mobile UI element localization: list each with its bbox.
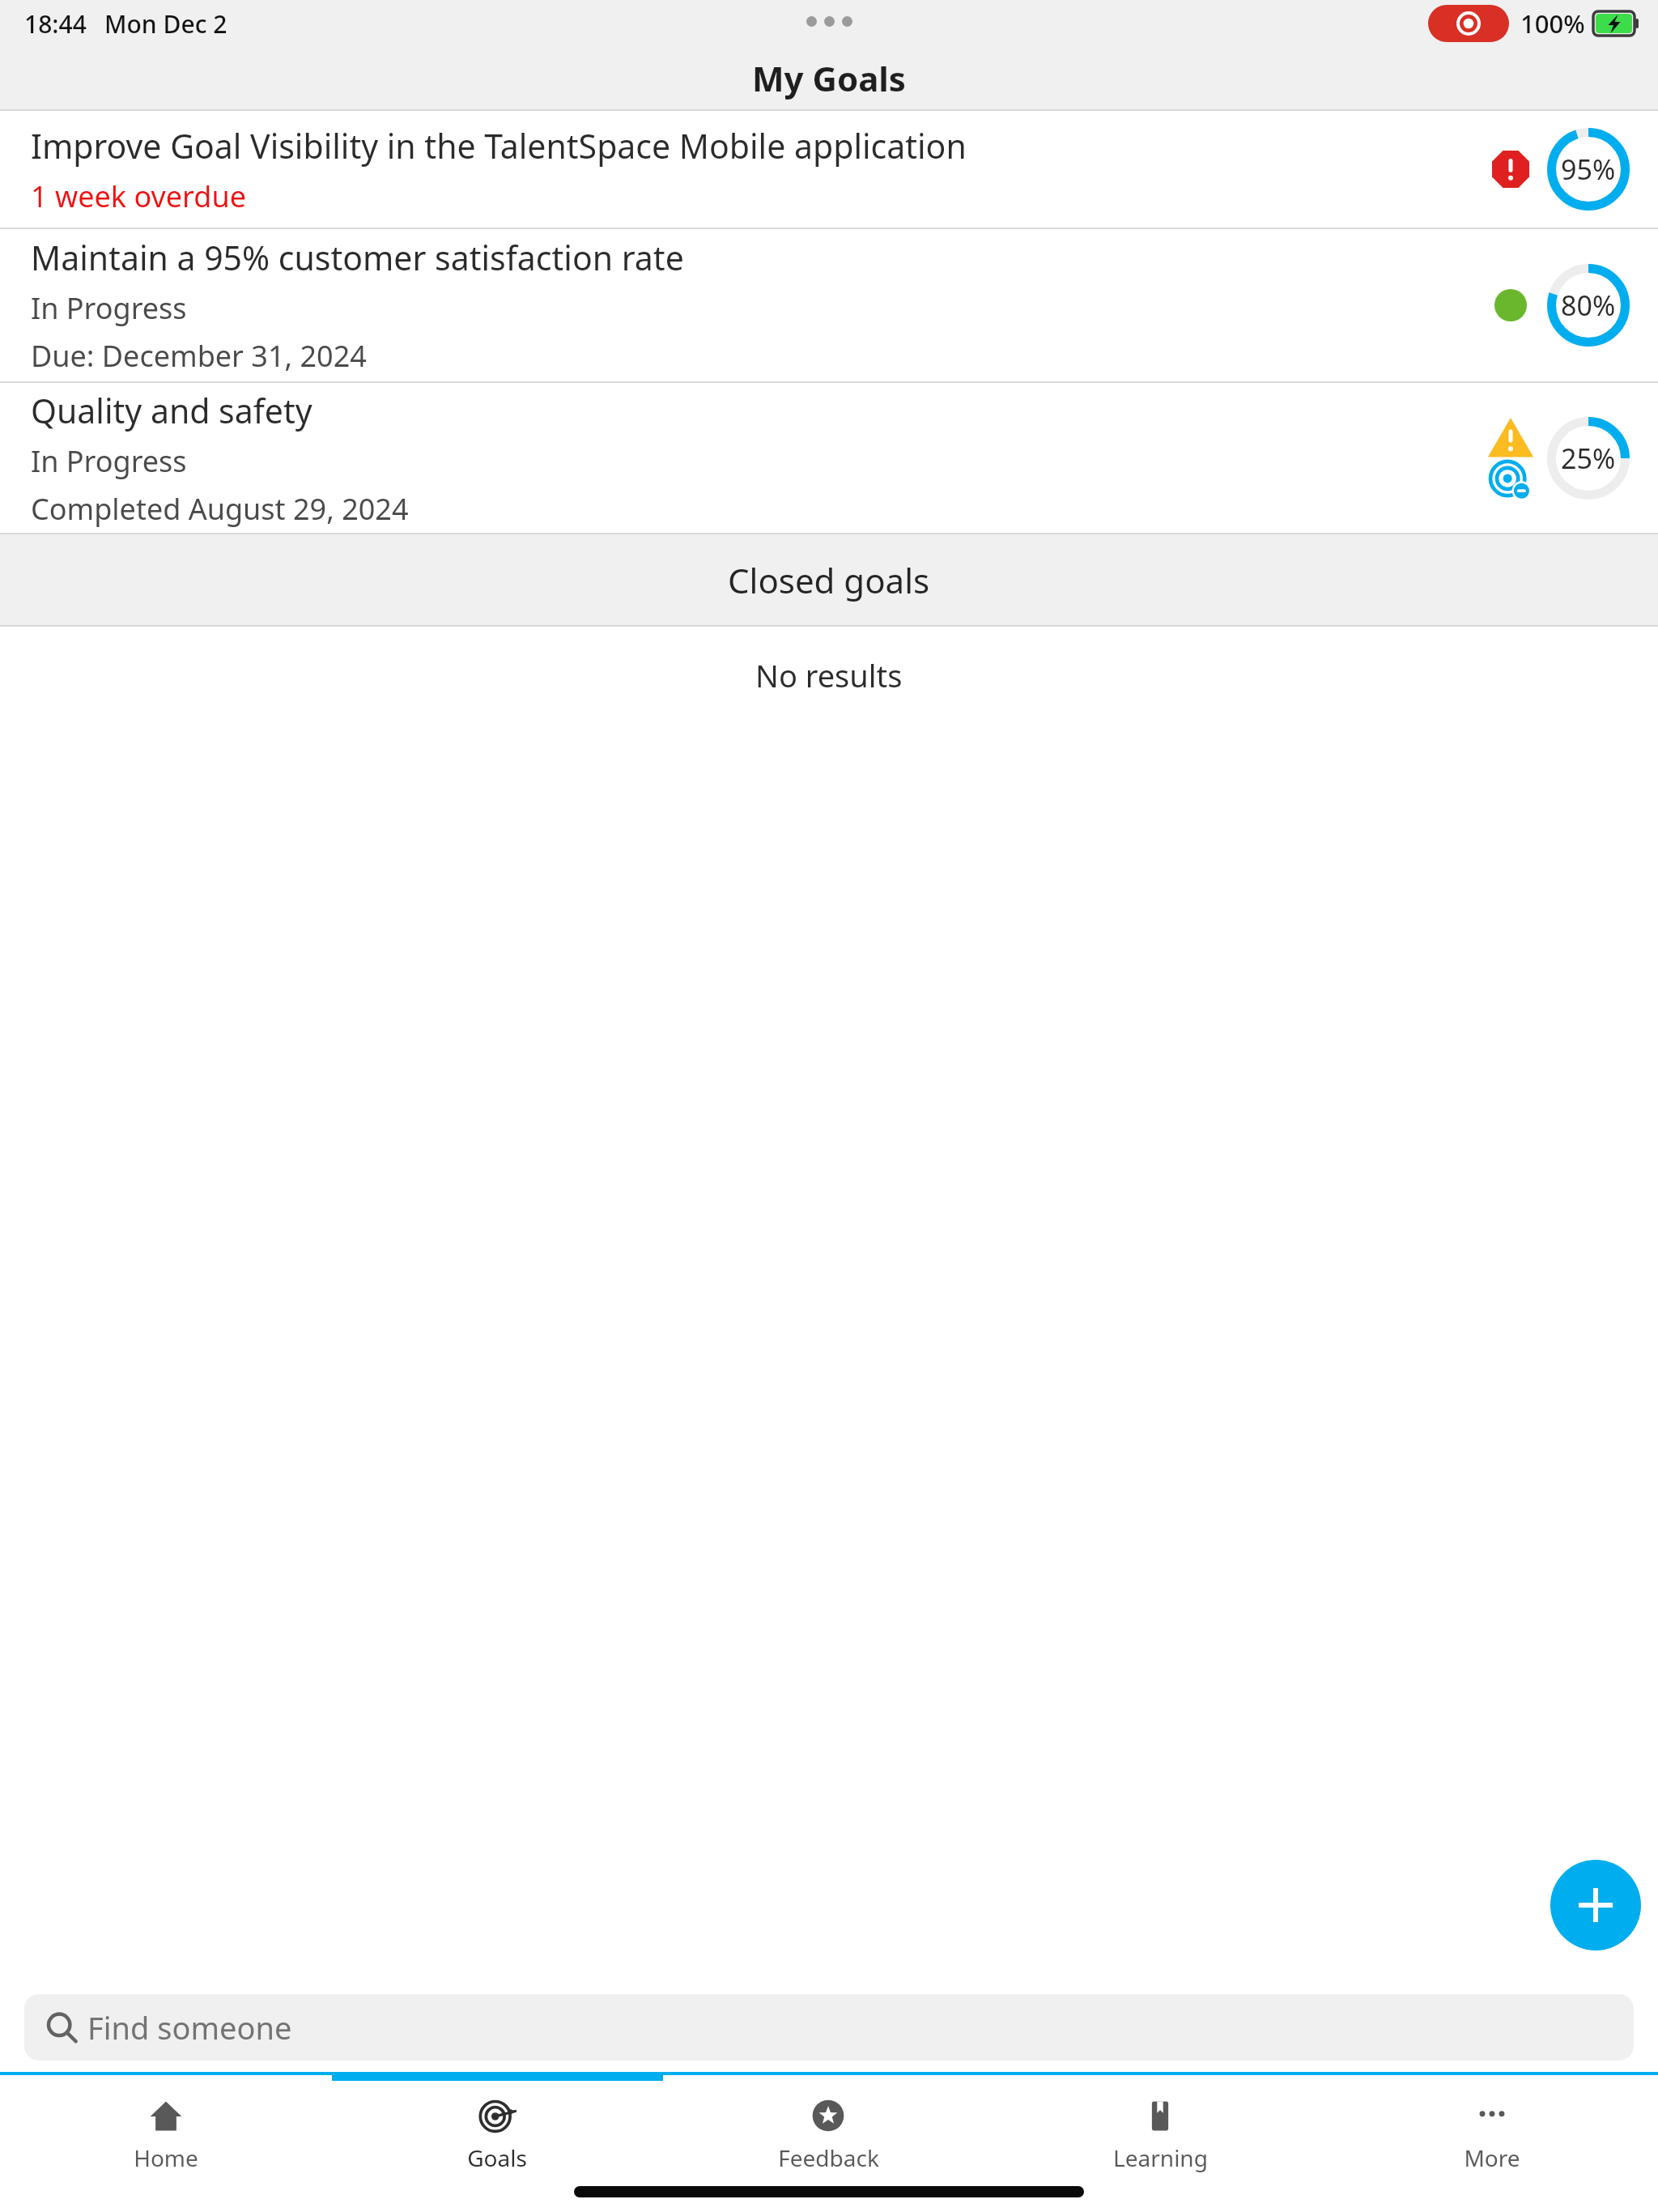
staticText: Find someone: [87, 2006, 292, 2048]
staticText: 1 week overdue: [31, 177, 246, 216]
staticText: Completed August 29, 2024: [31, 489, 409, 529]
button[interactable]: Maintain a 95% customer satisfaction rat…: [0, 229, 1658, 381]
staticText: 25%: [1561, 440, 1616, 477]
staticText: Improve Goal Visibility in the TalentSpa…: [31, 123, 967, 168]
staticText: In Progress: [31, 288, 187, 328]
staticText: No results: [755, 654, 903, 696]
staticText: Quality and safety: [31, 388, 312, 433]
staticText: 18:44: [24, 7, 87, 40]
staticText: Due: December 31, 2024: [31, 336, 367, 376]
staticText: In Progress: [31, 441, 187, 481]
staticText: 100%: [1520, 6, 1585, 40]
staticText: Mon Dec 2: [104, 7, 227, 40]
staticText: 95%: [1561, 151, 1616, 188]
button[interactable]: Add goal: [1550, 1860, 1641, 1950]
button[interactable]: Improve Goal Visibility in the TalentSpa…: [0, 111, 1658, 228]
staticText: My Goals: [752, 55, 906, 101]
staticText: Closed goals: [728, 557, 930, 603]
staticText: Home: [134, 2142, 198, 2173]
button[interactable]: Home: [0, 2081, 331, 2178]
staticText: Goals: [467, 2142, 527, 2173]
staticText: 80%: [1561, 287, 1616, 324]
staticText: Feedback: [778, 2142, 879, 2173]
button[interactable]: Find someone: [24, 1994, 1634, 2061]
button[interactable]: More: [1326, 2081, 1658, 2178]
staticText: More: [1464, 2142, 1520, 2173]
button[interactable]: Quality and safety: [0, 383, 1658, 533]
button[interactable]: Goals: [331, 2081, 662, 2178]
button[interactable]: Learning: [994, 2081, 1326, 2178]
staticText: Maintain a 95% customer satisfaction rat…: [31, 235, 684, 280]
button[interactable]: Feedback: [662, 2081, 994, 2178]
staticText: Learning: [1113, 2142, 1208, 2173]
